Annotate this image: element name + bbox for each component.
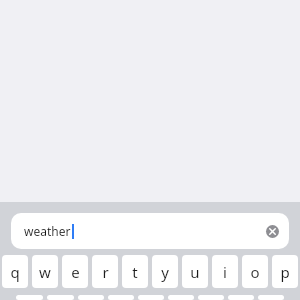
- button[interactable]: t: [122, 255, 148, 288]
- button[interactable]: g: [138, 295, 164, 300]
- staticText: w: [39, 262, 51, 282]
- button[interactable]: h: [168, 295, 194, 300]
- button[interactable]: Clear text: [260, 219, 284, 243]
- button[interactable]: i: [212, 255, 238, 288]
- button[interactable]: q: [2, 255, 28, 288]
- staticText: p: [280, 262, 290, 282]
- staticText: weather: [24, 223, 71, 239]
- button[interactable]: o: [242, 255, 268, 288]
- button[interactable]: d: [78, 295, 104, 300]
- staticText: o: [250, 262, 260, 282]
- button[interactable]: s: [47, 295, 74, 300]
- button[interactable]: u: [182, 255, 208, 288]
- staticText: r: [102, 262, 109, 282]
- staticText: y: [161, 262, 169, 282]
- button[interactable]: j: [198, 295, 224, 300]
- button[interactable]: r: [92, 255, 118, 288]
- button[interactable]: w: [32, 255, 58, 288]
- staticText: t: [132, 262, 138, 282]
- button[interactable]: y: [152, 255, 178, 288]
- staticText: u: [190, 262, 200, 282]
- button[interactable]: weather: [11, 213, 289, 249]
- staticText: q: [10, 262, 20, 282]
- button[interactable]: p: [272, 255, 298, 288]
- staticText: e: [71, 262, 80, 282]
- staticText: i: [223, 262, 227, 282]
- button[interactable]: l: [258, 295, 284, 300]
- button[interactable]: a: [16, 295, 43, 300]
- button[interactable]: f: [108, 295, 134, 300]
- button[interactable]: e: [62, 255, 88, 288]
- button[interactable]: k: [228, 295, 254, 300]
